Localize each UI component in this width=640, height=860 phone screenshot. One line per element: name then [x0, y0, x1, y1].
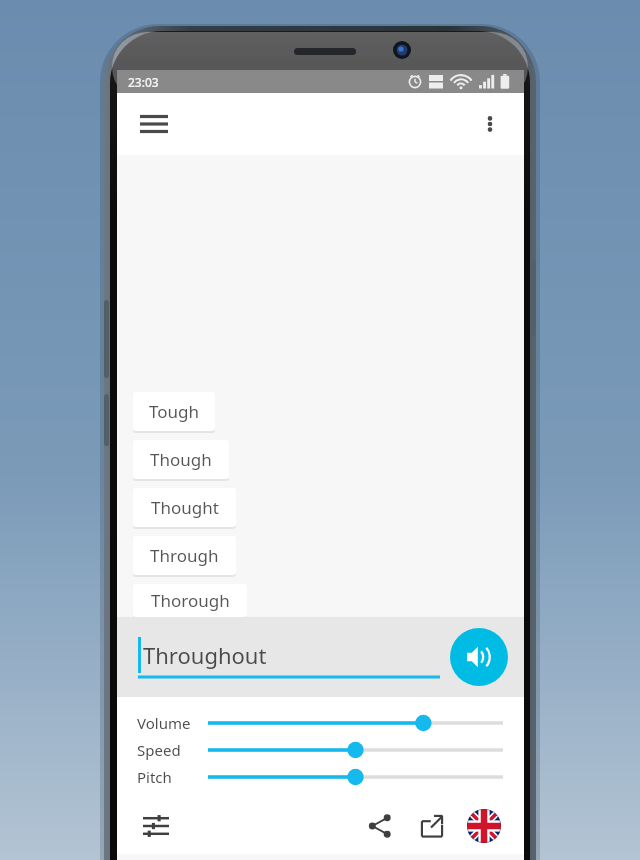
button[interactable] — [205, 737, 506, 763]
staticText: Pitch — [137, 767, 172, 787]
button[interactable]: More options — [468, 102, 512, 146]
staticText: Through — [150, 544, 219, 567]
button[interactable] — [205, 710, 506, 736]
button[interactable]: Tough — [133, 392, 215, 431]
staticText: Tough — [149, 400, 200, 423]
button[interactable]: Share — [358, 804, 402, 848]
button[interactable]: Thought — [133, 488, 236, 527]
staticText: Throughout — [143, 640, 267, 670]
button[interactable]: Open in new window — [410, 804, 454, 848]
staticText: Though — [150, 448, 212, 471]
staticText: 23:03 — [128, 74, 159, 90]
button[interactable]: Tune settings — [135, 805, 177, 847]
button[interactable]: Though — [133, 440, 229, 479]
button[interactable]: Select language: English (UK) — [462, 804, 506, 848]
button[interactable]: Open navigation menu — [132, 102, 176, 146]
staticText: Speed — [137, 740, 181, 760]
button[interactable]: Thorough — [133, 584, 247, 617]
button[interactable]: Through — [133, 536, 236, 575]
button[interactable]: Speak — [450, 628, 508, 686]
button[interactable]: Throughout — [138, 634, 440, 680]
staticText: Thorough — [151, 589, 230, 612]
button[interactable] — [205, 764, 506, 790]
staticText: Volume — [137, 713, 191, 733]
staticText: Thought — [151, 496, 219, 519]
